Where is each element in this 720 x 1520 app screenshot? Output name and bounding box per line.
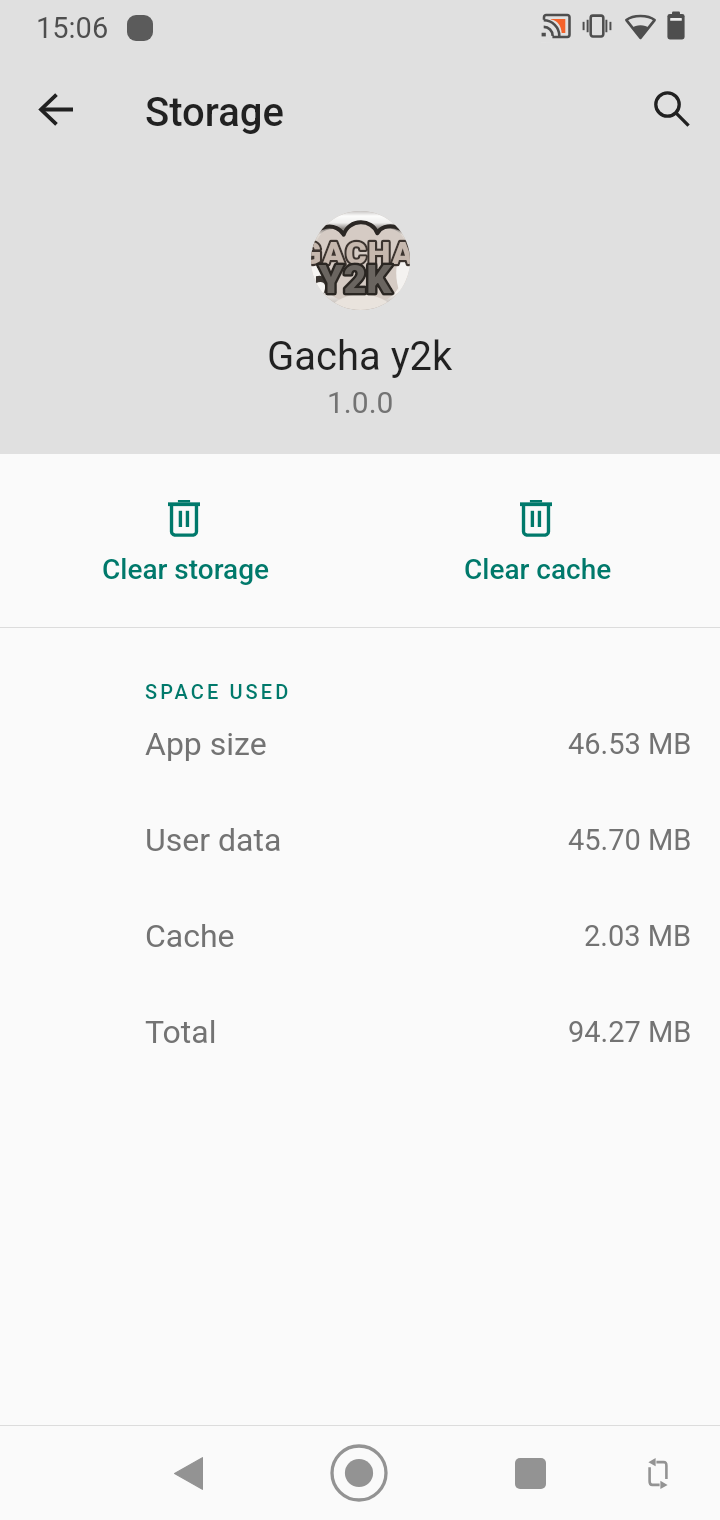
button[interactable]: Search xyxy=(624,72,704,152)
button[interactable]: Recents xyxy=(487,1426,571,1520)
staticText: 2.03 MB xyxy=(584,919,692,953)
staticText: Total xyxy=(145,1013,217,1051)
button[interactable]: Total xyxy=(0,984,720,1080)
staticText: Clear storage xyxy=(102,553,270,586)
staticText: 45.70 MB xyxy=(568,823,692,857)
button[interactable]: Rotate screen xyxy=(615,1426,699,1520)
button[interactable]: Cache xyxy=(0,888,720,984)
staticText: SPACE USED xyxy=(145,680,292,703)
staticText: App size xyxy=(145,725,267,763)
button[interactable]: Clear cache xyxy=(362,457,714,627)
button[interactable]: Navigate up xyxy=(16,72,96,152)
button[interactable]: App size xyxy=(0,696,720,792)
staticText: 46.53 MB xyxy=(568,727,692,761)
staticText: Clear cache xyxy=(464,553,612,586)
staticText: Storage xyxy=(145,89,284,136)
staticText: 15:06 xyxy=(36,11,109,45)
staticText: Gacha y2k xyxy=(267,333,453,380)
button[interactable]: User data xyxy=(0,792,720,888)
button[interactable]: Clear storage xyxy=(10,457,362,627)
staticText: Cache xyxy=(145,917,235,955)
staticText: 94.27 MB xyxy=(568,1015,692,1049)
staticText: User data xyxy=(145,821,282,859)
button[interactable]: Home xyxy=(317,1426,401,1520)
button[interactable]: Back xyxy=(145,1426,229,1520)
staticText: 1.0.0 xyxy=(327,385,394,420)
